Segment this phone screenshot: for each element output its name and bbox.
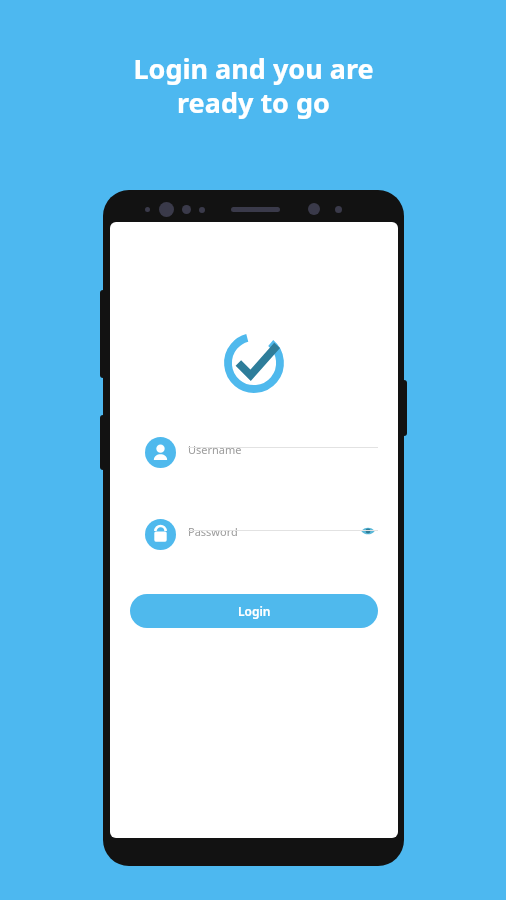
staticText: Login [238, 603, 271, 619]
other: Username [145, 437, 176, 468]
staticText: Username [188, 442, 242, 457]
staticText: Password [188, 524, 238, 539]
button[interactable]: Show password [360, 523, 376, 539]
other: Password [145, 519, 176, 550]
staticText: Login and you are ready to go [133, 50, 374, 121]
button[interactable]: Password [145, 515, 378, 561]
button[interactable]: Username [145, 433, 378, 479]
button[interactable]: Login [130, 594, 378, 628]
